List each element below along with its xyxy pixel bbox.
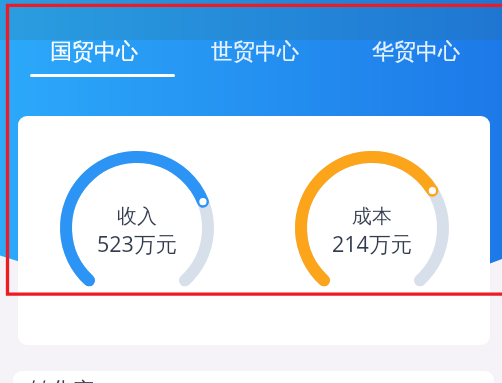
button[interactable]: 国贸中心	[14, 34, 174, 79]
button[interactable]: 转化率	[13, 371, 494, 383]
button[interactable]: 华贸中心	[335, 34, 496, 79]
staticText: 世贸中心	[211, 38, 299, 66]
staticText: 华贸中心	[372, 38, 460, 66]
staticText: 214万元	[332, 229, 412, 258]
staticText: 转化率	[29, 377, 95, 383]
staticText: 国贸中心	[50, 38, 138, 66]
staticText: 523万元	[97, 229, 177, 258]
staticText: 收入	[117, 204, 157, 229]
staticText: 成本	[352, 204, 392, 229]
button[interactable]: 收入	[18, 116, 490, 345]
button[interactable]: 世贸中心	[174, 34, 335, 79]
